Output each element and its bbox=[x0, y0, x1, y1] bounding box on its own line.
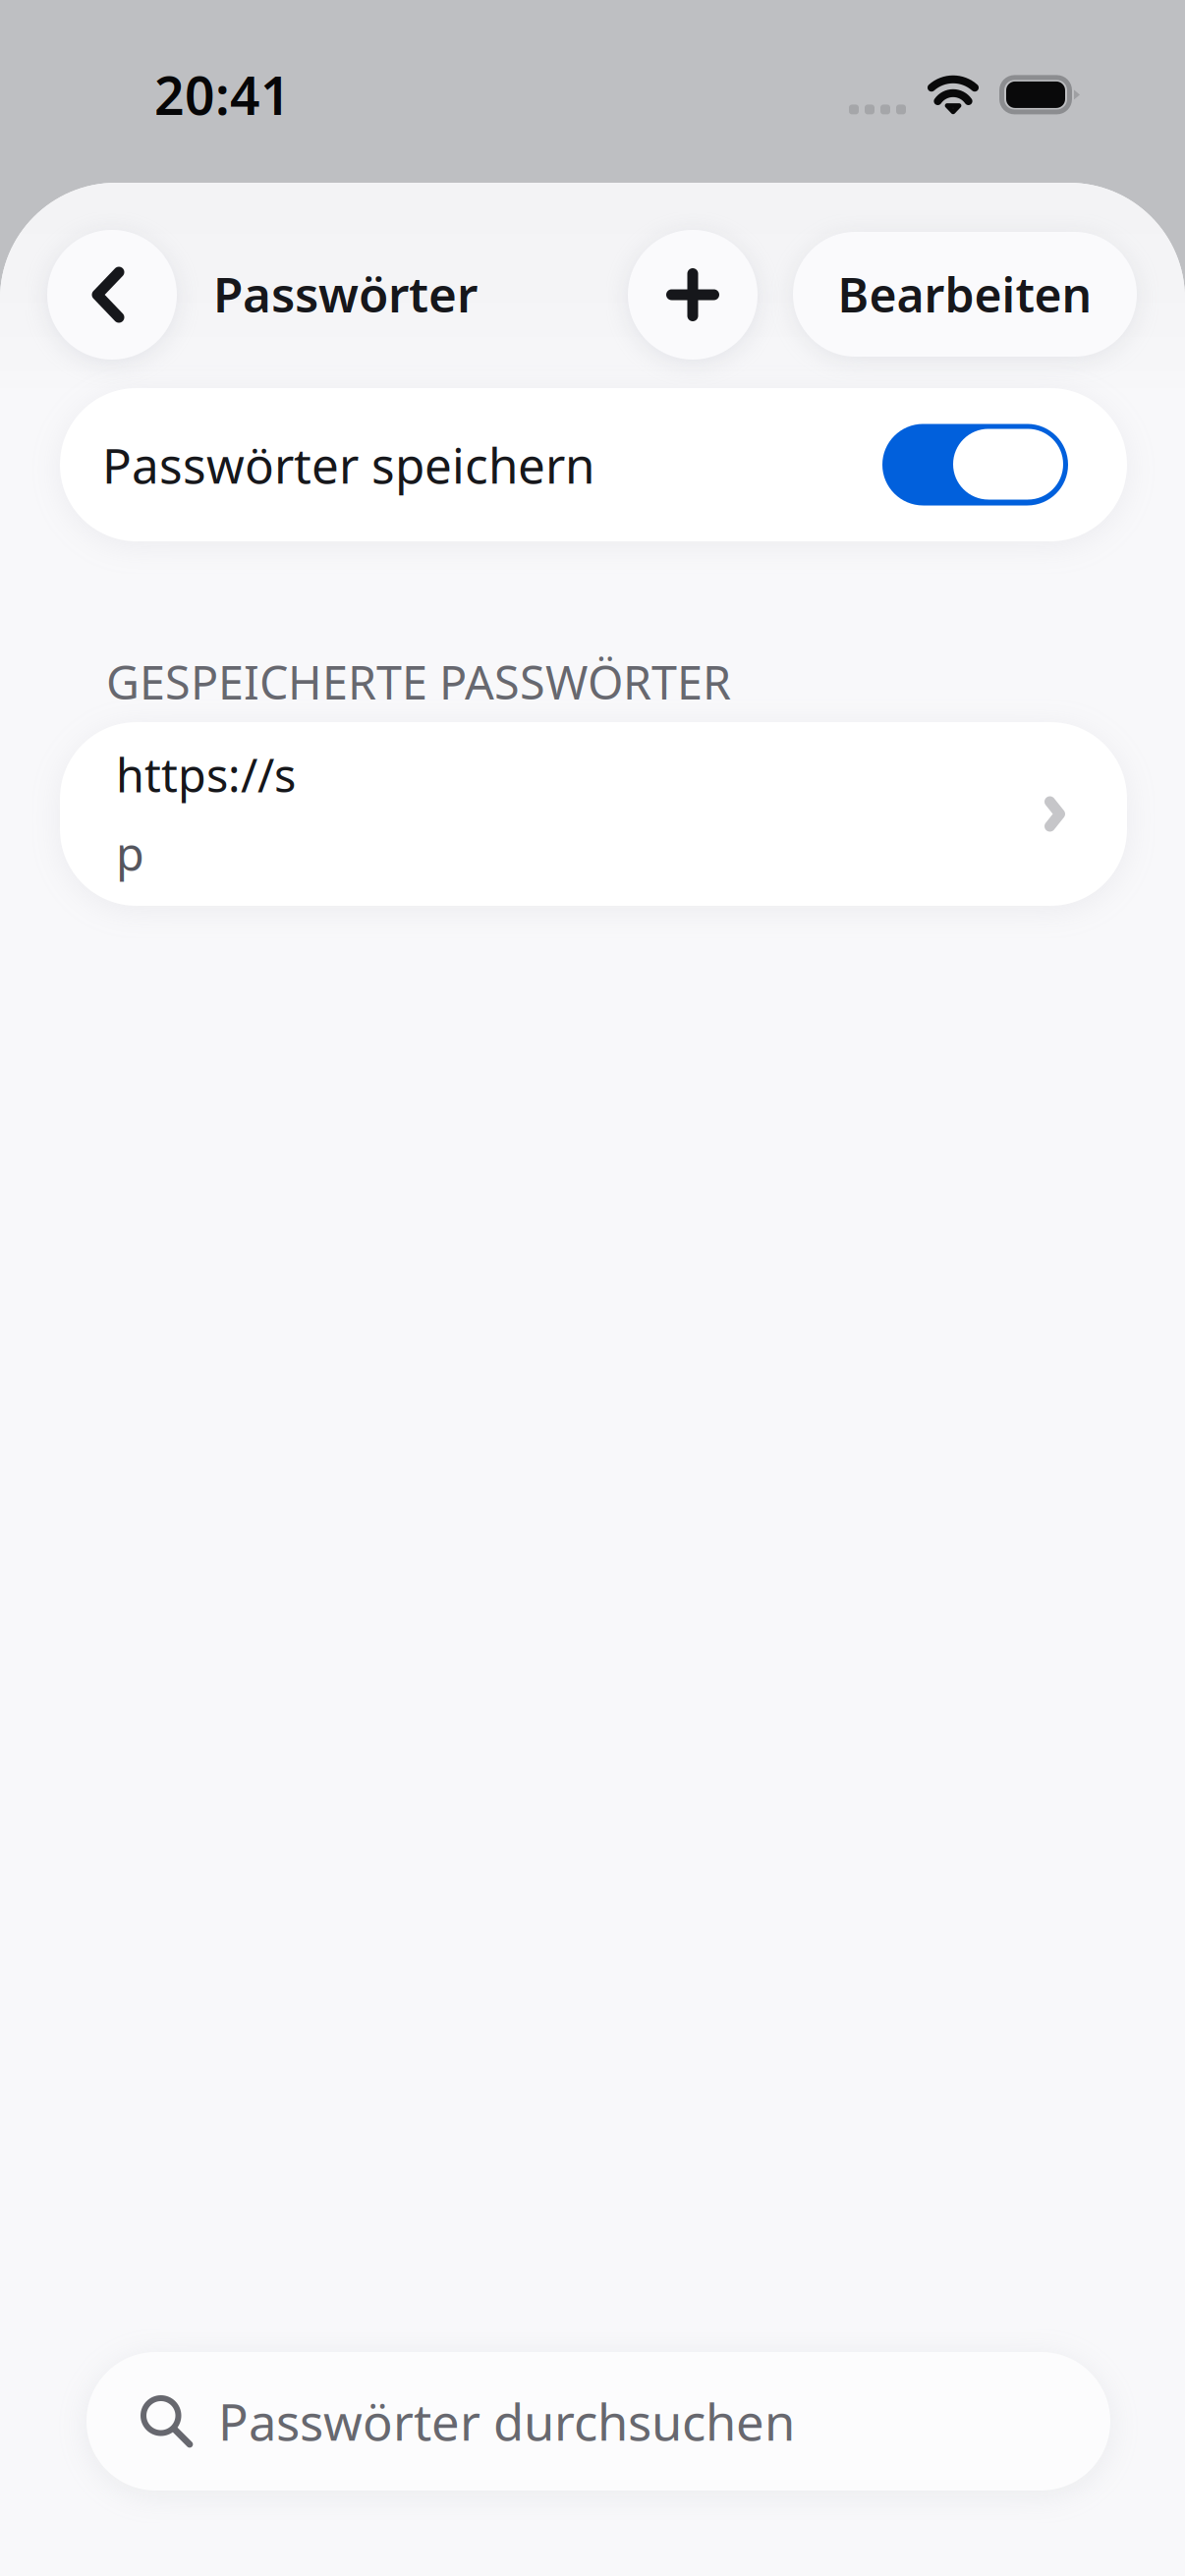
button[interactable]: https://s bbox=[60, 722, 1127, 906]
staticText: p bbox=[116, 823, 144, 884]
button[interactable]: Bearbeiten bbox=[793, 232, 1137, 357]
staticText: GESPEICHERTE PASSWÖRTER bbox=[106, 651, 731, 712]
staticText: Passwörter speichern bbox=[102, 432, 594, 497]
staticText: Bearbeiten bbox=[838, 263, 1092, 325]
staticText: Passwörter bbox=[213, 261, 478, 326]
staticText: 20:41 bbox=[154, 60, 291, 129]
button[interactable]: Hinzufügen bbox=[628, 230, 758, 360]
staticText: Passwörter durchsuchen bbox=[218, 2388, 795, 2454]
button[interactable]: Passwörter durchsuchen bbox=[86, 2352, 1110, 2491]
button[interactable]: Passwörter speichern bbox=[60, 388, 1127, 541]
staticText: https://s bbox=[116, 744, 296, 805]
button[interactable]: Zurück bbox=[47, 230, 177, 360]
